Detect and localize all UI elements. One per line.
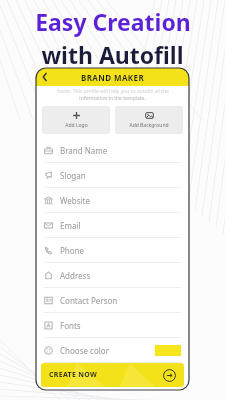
button[interactable]: Choose color [36, 338, 189, 362]
staticText: Fonts [60, 320, 81, 331]
staticText: BRAND MAKER [81, 72, 145, 83]
staticText: Add Background [129, 122, 169, 129]
staticText: Brand Name [60, 145, 108, 156]
button[interactable]: Add Logo [42, 106, 110, 134]
button[interactable]: CREATE NOW [41, 363, 184, 387]
button[interactable]: Contact Person [36, 288, 189, 312]
staticText: CREATE NOW [49, 370, 98, 380]
button[interactable]: Email [36, 213, 189, 237]
staticText: information in the template. [79, 95, 146, 102]
button[interactable]: Add Background [115, 106, 183, 134]
staticText: with Autofill [41, 39, 184, 70]
staticText: Add Logo [65, 122, 88, 129]
button[interactable]: Address [36, 263, 189, 287]
staticText: Phone [60, 245, 85, 256]
button[interactable]: Brand Name [36, 138, 189, 162]
button[interactable]: Phone [36, 238, 189, 262]
staticText: Contact Person [60, 295, 118, 306]
button[interactable]: Fonts [36, 313, 189, 337]
staticText: Easy Creation [35, 6, 191, 37]
button[interactable]: Slogan [36, 163, 189, 187]
staticText: Slogan [60, 170, 86, 181]
staticText: Address [60, 270, 91, 281]
staticText: Email [60, 220, 81, 231]
staticText: Website [60, 195, 91, 206]
staticText: Choose color [60, 345, 109, 356]
button[interactable]: Website [36, 188, 189, 212]
staticText: faster. This profile will help you to au… [57, 88, 169, 95]
button[interactable]: Back [36, 68, 54, 86]
